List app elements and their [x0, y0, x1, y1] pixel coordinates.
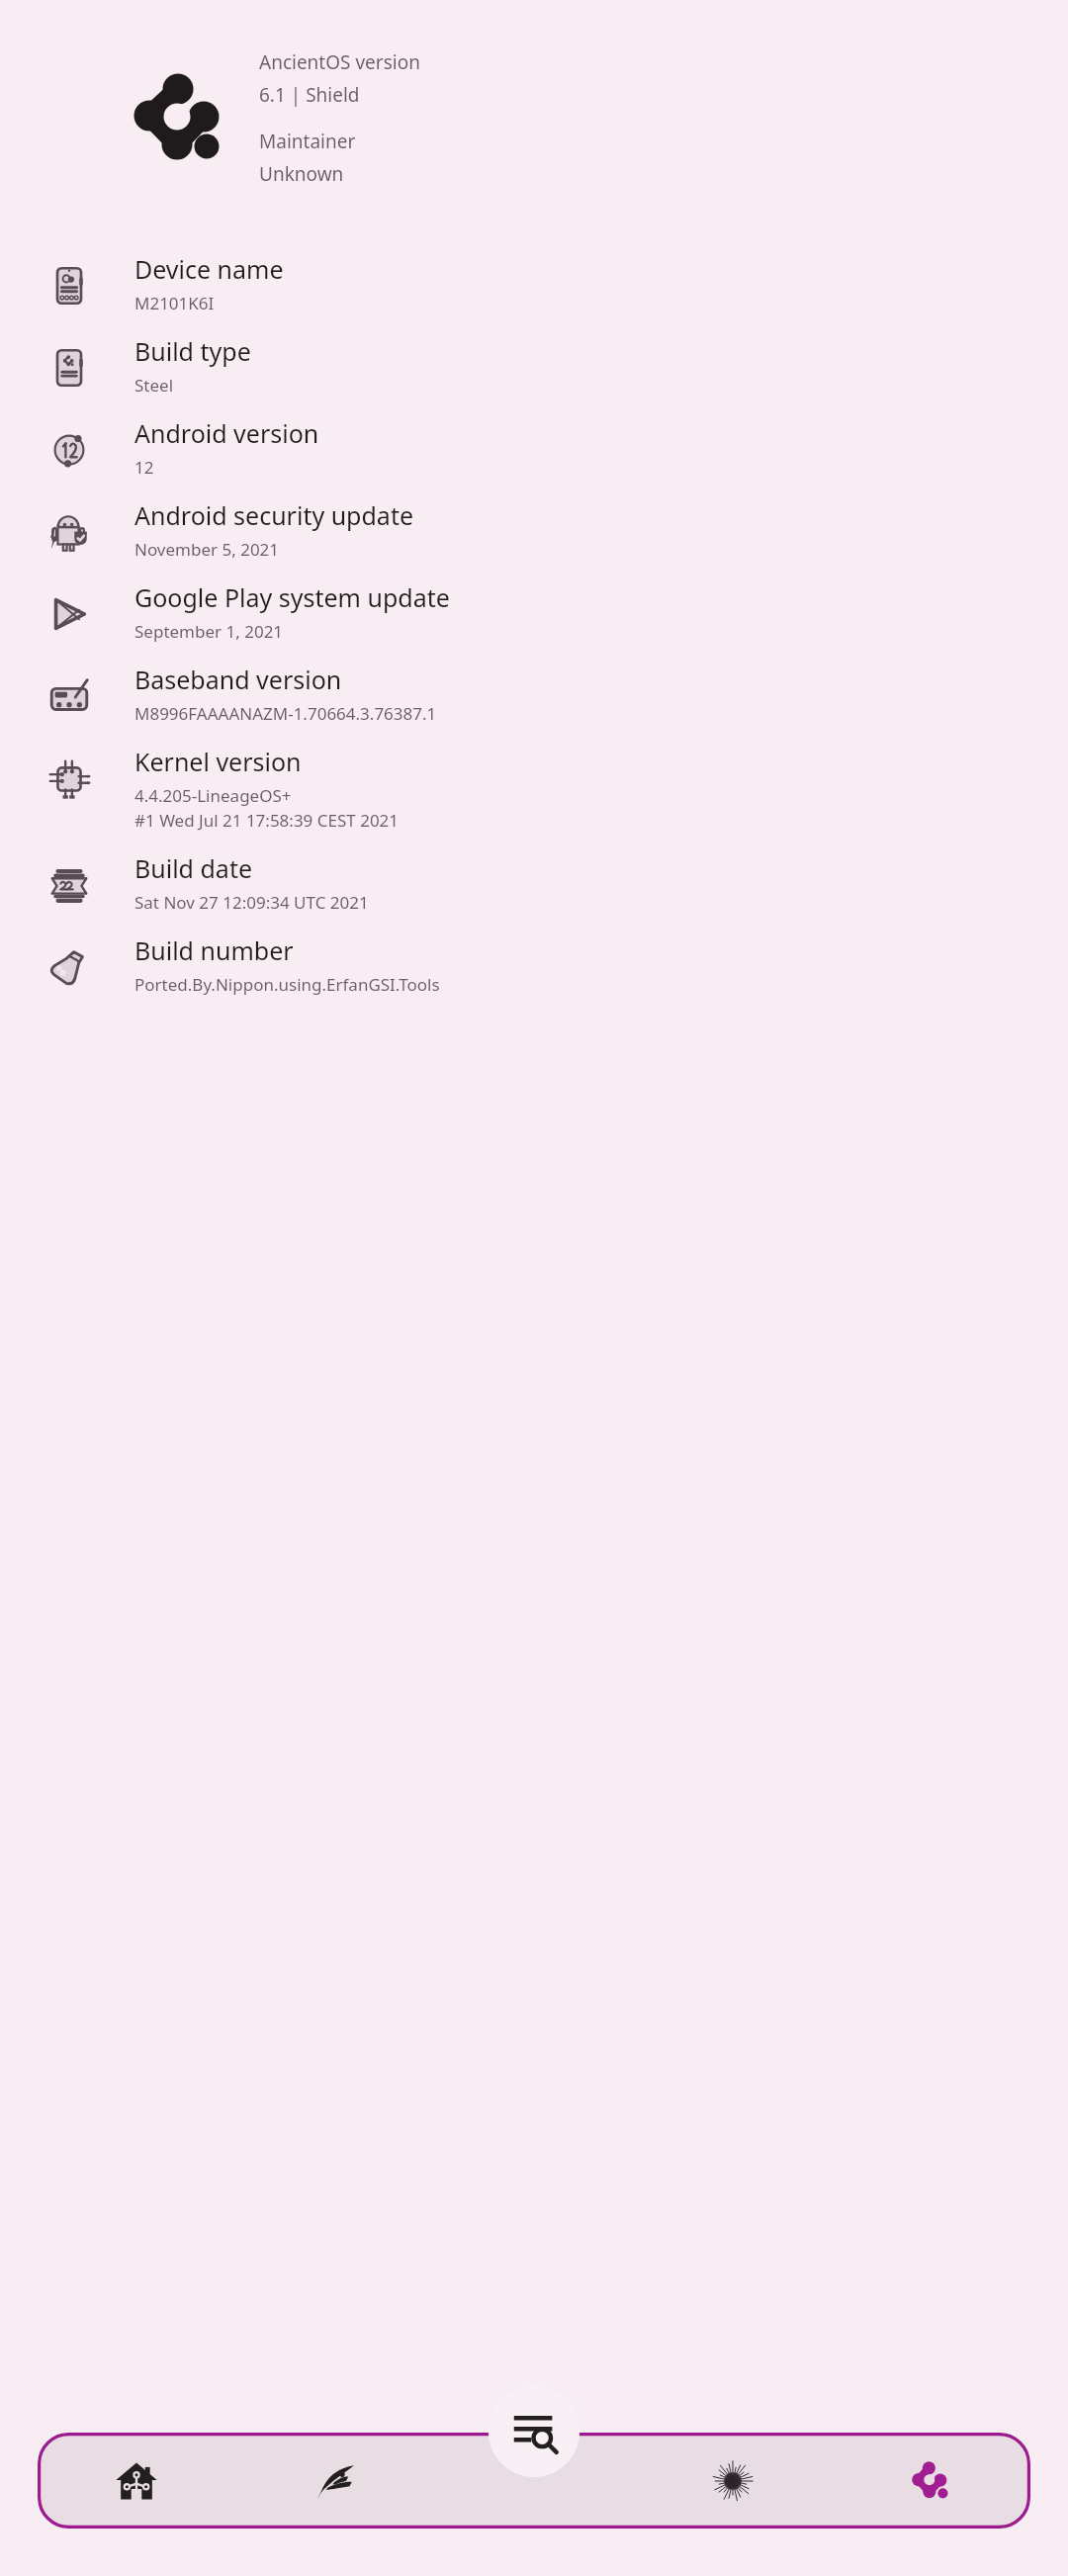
button[interactable]: Device name	[0, 242, 1068, 324]
staticText: 6.1 | Shield	[259, 82, 360, 108]
staticText: 12	[134, 456, 154, 479]
button[interactable]: Spark	[633, 2433, 832, 2529]
button[interactable]: Home	[38, 2433, 235, 2529]
staticText: Device name	[134, 252, 284, 286]
button[interactable]: Google Play system update	[0, 571, 1068, 653]
button[interactable]: Kernel version	[0, 735, 1068, 842]
staticText: Sat Nov 27 12:09:34 UTC 2021	[134, 891, 369, 914]
staticText: Build date	[134, 851, 253, 885]
staticText: Android security update	[134, 498, 414, 532]
staticText: November 5, 2021	[134, 538, 280, 561]
staticText: Ported.By.Nippon.using.ErfanGSI.Tools	[134, 973, 440, 996]
staticText: September 1, 2021	[134, 620, 284, 643]
button[interactable]: Search	[489, 2386, 579, 2477]
button[interactable]: AncientOS	[832, 2433, 1030, 2529]
staticText: Maintainer	[259, 129, 356, 154]
staticText: AncientOS version	[259, 49, 420, 75]
staticText: Baseband version	[134, 663, 342, 696]
staticText: Steel	[134, 374, 174, 397]
button[interactable]: Feather	[235, 2433, 434, 2529]
staticText: M8996FAAAANAZM-1.70664.3.76387.1	[134, 702, 437, 725]
staticText: M2101K6I	[134, 292, 215, 314]
button[interactable]: Build type	[0, 324, 1068, 406]
staticText: Build type	[134, 334, 251, 368]
staticText: Android version	[134, 416, 319, 450]
staticText: Unknown	[259, 161, 344, 187]
button[interactable]: Baseband version	[0, 653, 1068, 735]
button[interactable]: Build date	[0, 842, 1068, 924]
button[interactable]: Build number	[0, 924, 1068, 1006]
staticText: Build number	[134, 933, 294, 967]
button[interactable]: Android security update	[0, 489, 1068, 571]
staticText: Kernel version	[134, 745, 302, 778]
button[interactable]: Android version	[0, 406, 1068, 489]
staticText: 4.4.205-LineageOS+	[134, 784, 292, 807]
staticText: #1 Wed Jul 21 17:58:39 CEST 2021	[134, 809, 400, 832]
staticText: Google Play system update	[134, 580, 450, 614]
